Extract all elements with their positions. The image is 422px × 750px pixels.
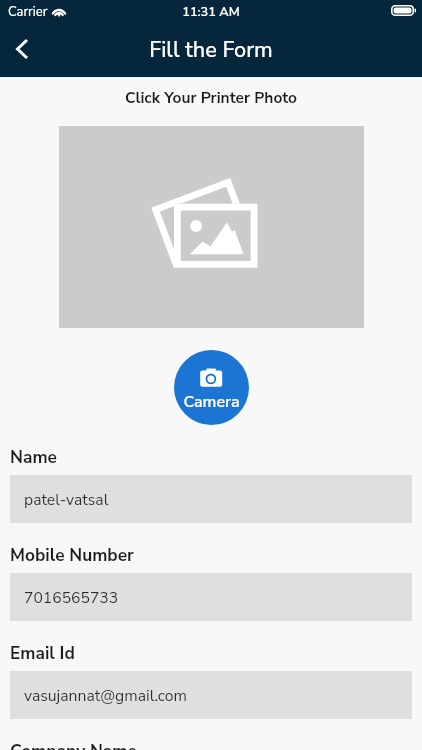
staticText: 11:31 AM bbox=[0, 3, 422, 20]
button[interactable]: patel-vatsal bbox=[10, 475, 412, 523]
staticText: Fill the Form bbox=[0, 35, 422, 65]
button[interactable]: Back bbox=[0, 25, 46, 77]
staticText: Mobile Number bbox=[10, 544, 134, 568]
button[interactable]: 7016565733 bbox=[10, 573, 412, 621]
button[interactable]: Camera bbox=[174, 350, 249, 425]
staticText: 7016565733 bbox=[24, 587, 119, 608]
staticText: Email Id bbox=[10, 642, 75, 666]
staticText: Name bbox=[10, 446, 57, 470]
staticText: patel-vatsal bbox=[24, 489, 109, 510]
staticText: vasujannat@gmail.com bbox=[24, 685, 187, 706]
staticText: Click Your Printer Photo bbox=[0, 87, 422, 108]
staticText: Camera bbox=[174, 391, 249, 413]
staticText: Company Name bbox=[10, 740, 137, 750]
button[interactable]: vasujannat@gmail.com bbox=[10, 671, 412, 719]
staticText: Carrier bbox=[8, 3, 48, 21]
